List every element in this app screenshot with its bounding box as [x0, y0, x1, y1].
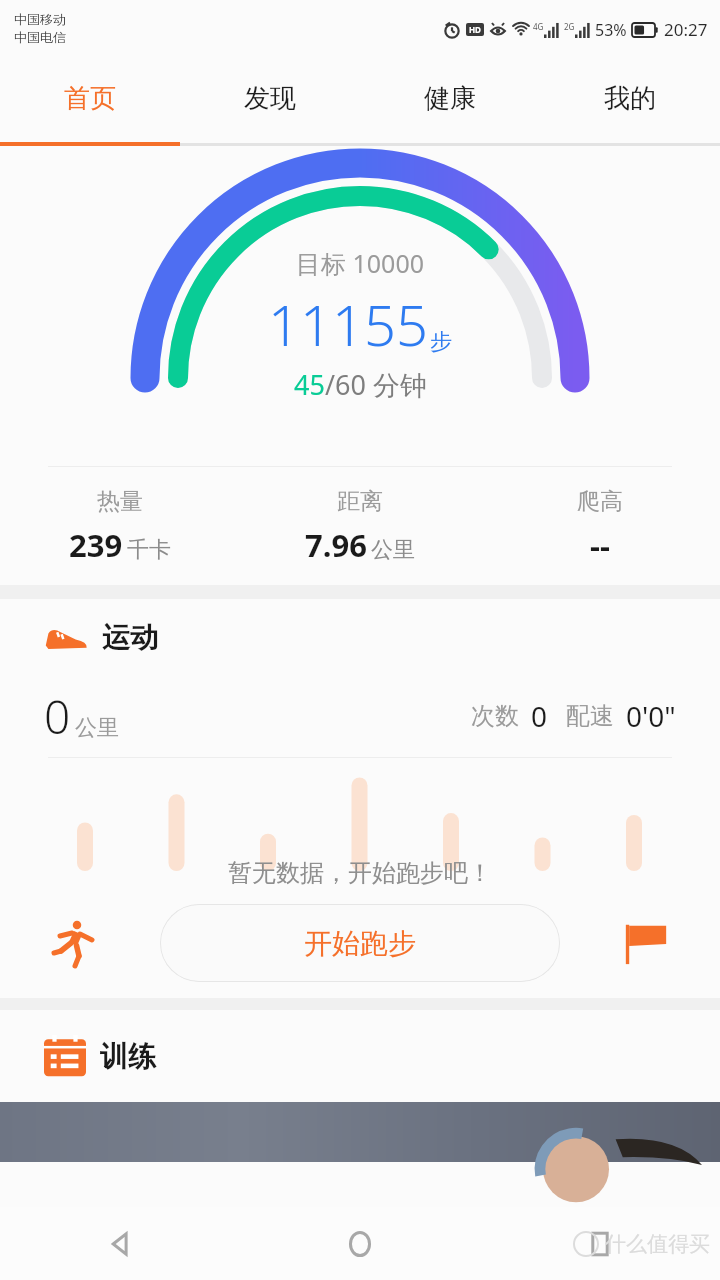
- button[interactable]: 跑步记录: [46, 915, 102, 971]
- button[interactable]: 目标 10000: [0, 146, 720, 466]
- staticText: 步: [430, 328, 452, 356]
- staticText: 0: [531, 697, 548, 735]
- staticText: 公里: [75, 714, 119, 742]
- staticText: 4G: [533, 21, 544, 32]
- button[interactable]: 距离: [240, 467, 480, 585]
- staticText: 中国移动: [14, 11, 66, 27]
- staticText: 发现: [244, 82, 296, 115]
- staticText: 我的: [604, 82, 656, 115]
- button[interactable]: 热量: [0, 467, 240, 585]
- staticText: 0: [44, 685, 71, 748]
- staticText: 什么值得买: [605, 1231, 710, 1257]
- button[interactable]: 发现: [180, 56, 360, 140]
- staticText: 运动: [102, 620, 158, 655]
- staticText: 公里: [371, 536, 415, 564]
- staticText: 20:27: [664, 18, 708, 41]
- button[interactable]: 运动: [44, 599, 720, 675]
- staticText: 2G: [564, 21, 575, 32]
- staticText: 11155: [268, 286, 428, 362]
- button[interactable]: [0, 1102, 720, 1162]
- staticText: 暂无数据，开始跑步吧！: [0, 858, 720, 888]
- button[interactable]: 训练: [44, 1010, 720, 1102]
- staticText: 距离: [337, 487, 383, 516]
- staticText: 千卡: [127, 536, 171, 564]
- button[interactable]: 开始跑步: [160, 904, 560, 982]
- staticText: 239: [69, 524, 123, 566]
- other: 训练: [44, 1035, 86, 1077]
- staticText: 次数: [471, 701, 519, 731]
- button[interactable]: 最近任务: [480, 1207, 720, 1280]
- staticText: 爬高: [577, 487, 623, 516]
- staticText: 健康: [424, 82, 476, 115]
- staticText: 开始跑步: [304, 926, 416, 961]
- staticText: 0'0": [626, 697, 676, 735]
- staticText: 目标 10000: [296, 246, 425, 280]
- staticText: 配速: [566, 701, 614, 731]
- staticText: --: [590, 524, 610, 566]
- staticText: 热量: [97, 487, 143, 516]
- button[interactable]: 我的: [540, 56, 720, 140]
- staticText: HD: [469, 24, 481, 35]
- staticText: /60 分钟: [325, 366, 427, 403]
- staticText: 首页: [64, 82, 116, 115]
- staticText: 53%: [595, 19, 627, 41]
- staticText: 训练: [100, 1039, 156, 1074]
- button[interactable]: 爬高: [480, 467, 720, 585]
- staticText: 45: [294, 366, 325, 403]
- button[interactable]: 首页: [0, 56, 180, 140]
- other: 运动: [44, 622, 88, 652]
- staticText: 中国电信: [14, 29, 66, 45]
- button[interactable]: 主页: [240, 1207, 480, 1280]
- button[interactable]: 返回: [0, 1207, 240, 1280]
- button[interactable]: 目标: [618, 915, 674, 971]
- staticText: 7.96: [305, 524, 367, 566]
- button[interactable]: 健康: [360, 56, 540, 140]
